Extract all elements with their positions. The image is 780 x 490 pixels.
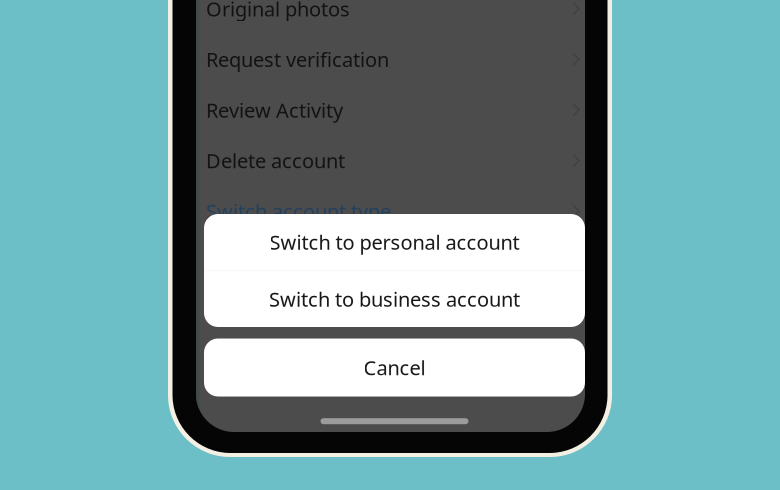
staticText: Switch account type (206, 198, 391, 224)
button[interactable]: Review Activity (196, 85, 585, 135)
button[interactable]: Switch account type (196, 186, 585, 236)
staticText: Cancel (363, 354, 425, 381)
staticText: Review Activity (206, 97, 343, 123)
staticText: Switch to personal account (269, 229, 519, 255)
button[interactable]: Switch to personal account (204, 214, 585, 270)
button[interactable]: Delete account (196, 135, 585, 186)
button[interactable]: Request verification (196, 34, 585, 85)
staticText: Delete account (206, 147, 345, 174)
button[interactable]: Switch to business account (204, 271, 585, 327)
staticText: Original photos (206, 0, 350, 22)
button[interactable]: Original photos (196, 0, 585, 34)
staticText: Switch to business account (269, 286, 520, 312)
staticText: Request verification (206, 46, 389, 73)
button[interactable]: Cancel (204, 338, 585, 396)
